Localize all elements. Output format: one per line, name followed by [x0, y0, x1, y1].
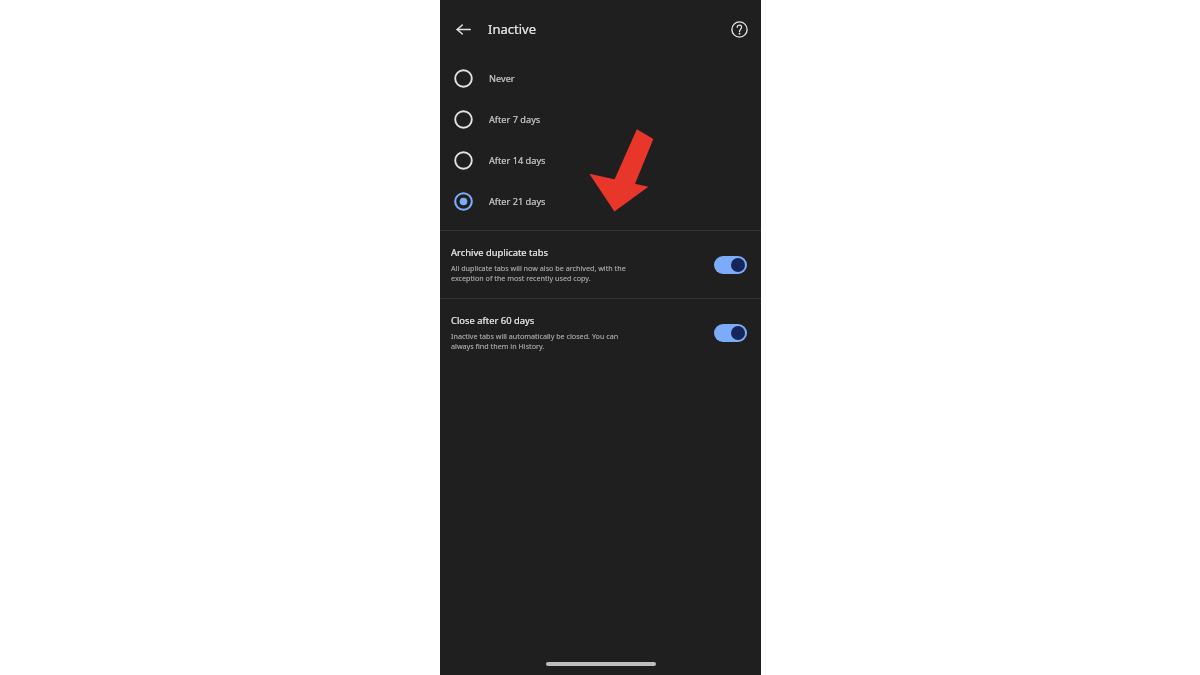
staticText: Archive duplicate tabs: [451, 246, 548, 259]
button[interactable]: Archive duplicate tabs: [440, 231, 761, 298]
staticText: Inactive: [488, 20, 536, 38]
button[interactable]: After 14 days: [440, 140, 761, 181]
button[interactable]: Toggle: [714, 256, 747, 274]
button[interactable]: Close after 60 days: [440, 299, 761, 366]
staticText: exception of the most recently used copy…: [451, 273, 591, 283]
staticText: always find them in History.: [451, 341, 545, 351]
button[interactable]: After 21 days: [440, 181, 761, 222]
staticText: All duplicate tabs will now also be arch…: [451, 263, 626, 273]
button[interactable]: Never: [440, 58, 761, 99]
staticText: Never: [489, 72, 515, 85]
button[interactable]: Toggle: [714, 324, 747, 342]
staticText: After 7 days: [489, 113, 541, 126]
staticText: Close after 60 days: [451, 314, 535, 327]
button[interactable]: After 7 days: [440, 99, 761, 140]
button[interactable]: Back: [450, 16, 476, 42]
staticText: After 21 days: [489, 195, 546, 208]
staticText: Inactive tabs will automatically be clos…: [451, 331, 619, 341]
staticText: After 14 days: [489, 154, 546, 167]
button[interactable]: Help: [725, 15, 753, 43]
